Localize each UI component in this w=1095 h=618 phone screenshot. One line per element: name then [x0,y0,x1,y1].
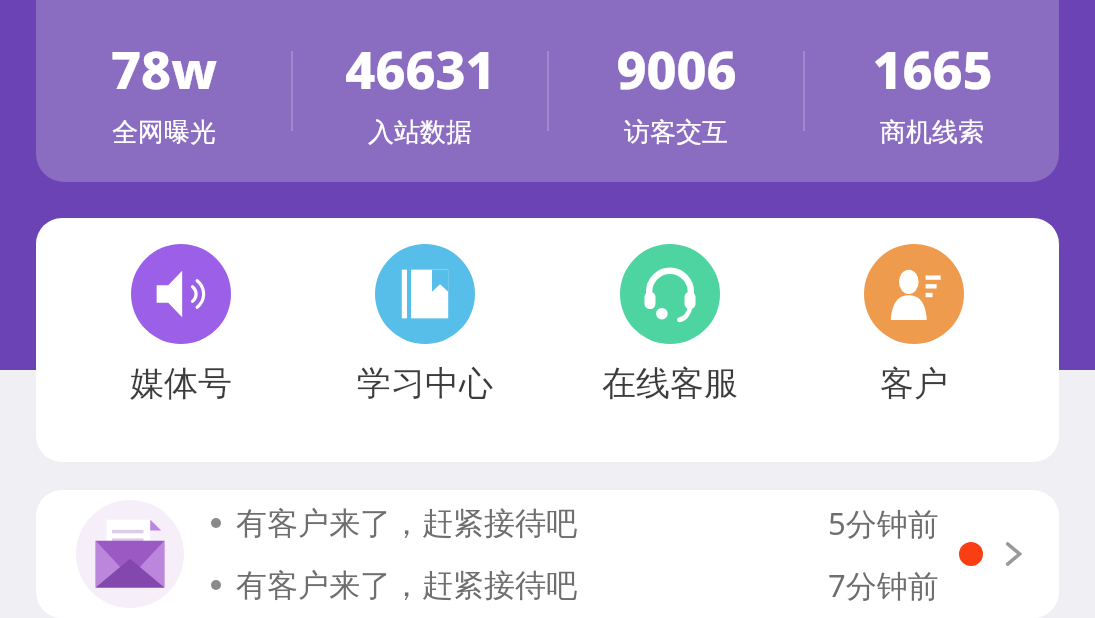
staticText: 客户 [880,362,948,405]
staticText: 学习中心 [357,362,493,405]
staticText: 7分钟前 [828,564,939,606]
button[interactable]: 1665 [805,33,1059,149]
staticText: 全网曝光 [112,116,216,149]
staticText: 有客户来了，赶紧接待吧 [236,504,577,543]
button[interactable]: 在线客服 [570,244,770,405]
button[interactable]: 客户 [814,244,1014,405]
staticText: 媒体号 [130,362,232,405]
button[interactable]: 查看更多 [991,532,1035,576]
staticText: 有客户来了，赶紧接待吧 [236,566,577,605]
button[interactable]: 学习中心 [325,244,525,405]
staticText: 商机线索 [880,116,984,149]
staticText: 5分钟前 [828,502,939,544]
staticText: 9006 [616,33,737,104]
staticText: 1665 [872,33,993,104]
button[interactable]: 有客户来了，赶紧接待吧 [36,490,1059,618]
button[interactable]: 78w [36,33,291,149]
staticText: 78w [111,33,217,104]
staticText: 在线客服 [602,362,738,405]
button[interactable]: 媒体号 [81,244,281,405]
staticText: 46631 [345,33,496,104]
staticText: 访客交互 [624,116,728,149]
button[interactable]: 78w [36,0,1059,182]
staticText: 入站数据 [368,116,472,149]
button[interactable]: 9006 [549,33,803,149]
button[interactable]: 46631 [293,33,547,149]
